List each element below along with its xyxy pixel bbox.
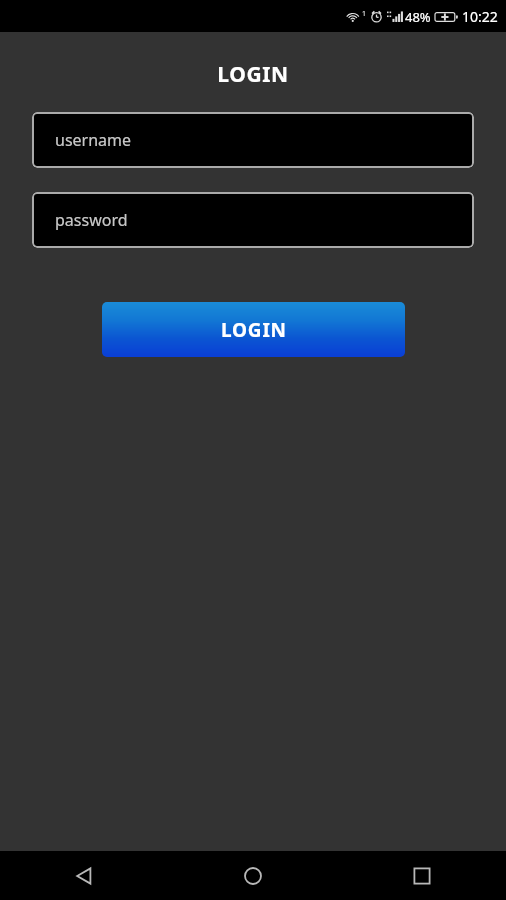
button[interactable]: username — [32, 112, 474, 168]
staticText: 48% — [405, 8, 431, 26]
button[interactable]: LOGIN — [102, 302, 405, 357]
staticText: 1 — [362, 9, 367, 19]
button[interactable]: Home — [168, 851, 337, 900]
button[interactable]: Back — [0, 851, 168, 900]
staticText: LOGIN — [217, 60, 289, 89]
staticText: 10:22 — [462, 7, 498, 26]
staticText: LOGIN — [221, 317, 287, 343]
staticText: password — [55, 209, 128, 231]
button[interactable]: password — [32, 192, 474, 248]
button[interactable]: Recent apps — [337, 851, 506, 900]
staticText: username — [55, 129, 132, 151]
